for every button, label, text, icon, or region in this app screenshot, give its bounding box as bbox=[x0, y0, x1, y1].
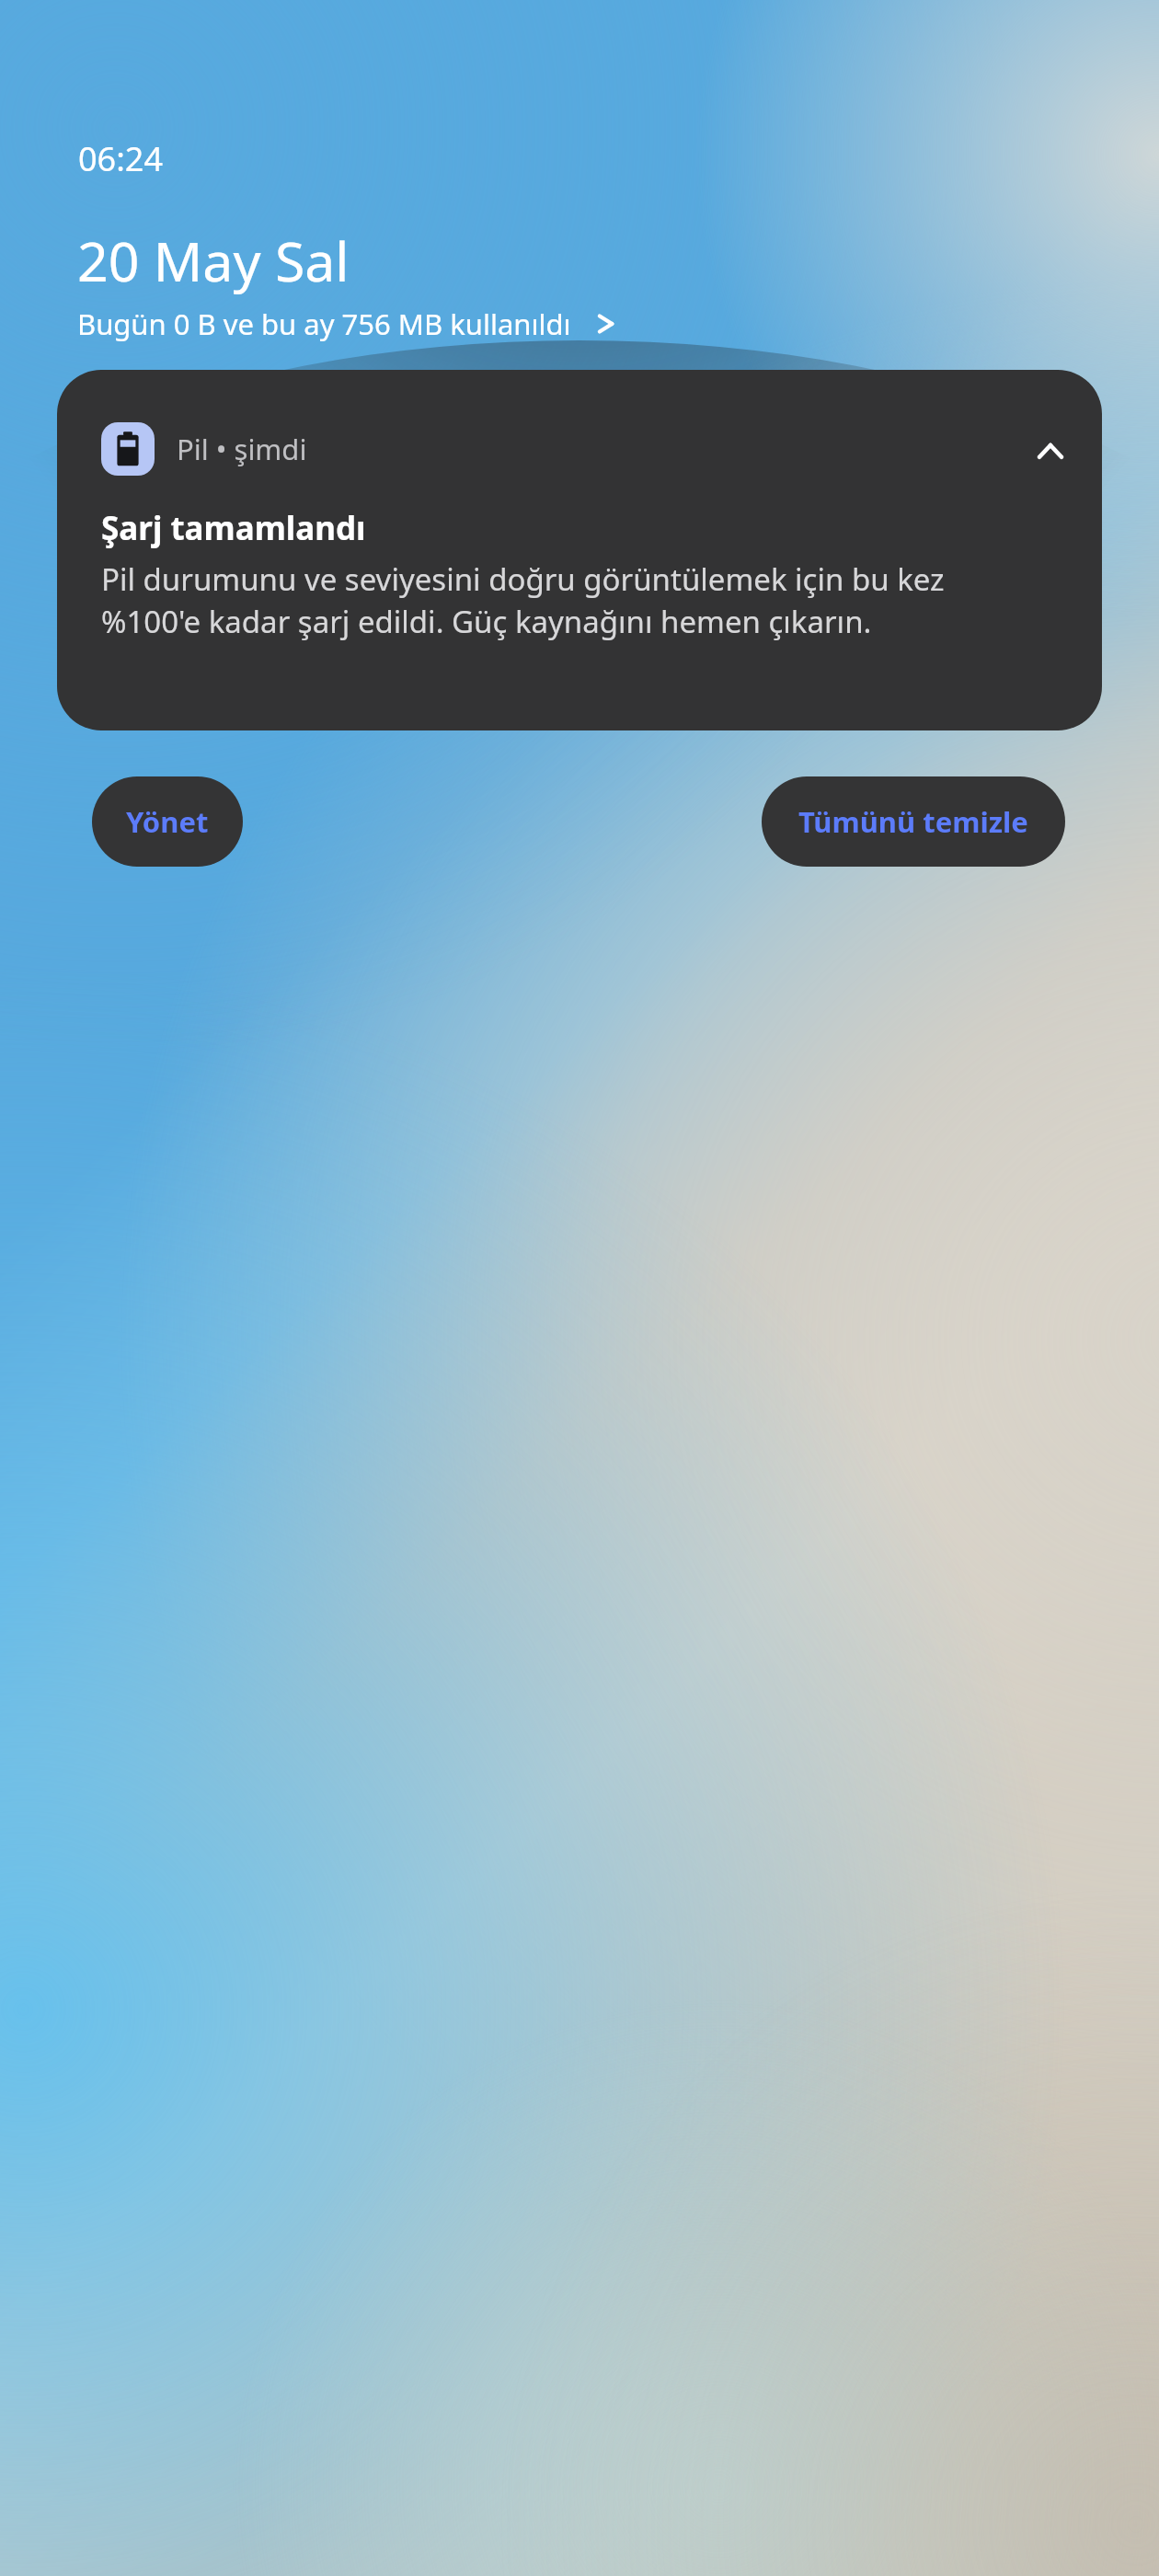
button[interactable]: Bildirimi daralt bbox=[1006, 405, 1095, 493]
staticText: Pil durumunu ve seviyesini doğru görüntü… bbox=[101, 558, 1049, 642]
staticText: Şarj tamamlandı bbox=[101, 506, 366, 550]
staticText: Pil • şimdi bbox=[177, 430, 307, 468]
button[interactable]: Bugün 0 B ve bu ay 756 MB kullanıldı bbox=[77, 305, 623, 343]
button[interactable]: Yönet bbox=[92, 776, 243, 867]
button[interactable]: Pil • şimdi bbox=[57, 370, 1102, 730]
staticText: Tümünü temizle bbox=[798, 802, 1028, 841]
staticText: Yönet bbox=[126, 802, 209, 841]
staticText: 06:24 bbox=[78, 136, 164, 181]
button[interactable]: Tümünü temizle bbox=[762, 776, 1065, 867]
staticText: Bugün 0 B ve bu ay 756 MB kullanıldı bbox=[77, 305, 571, 343]
staticText: 20 May Sal bbox=[77, 224, 350, 297]
